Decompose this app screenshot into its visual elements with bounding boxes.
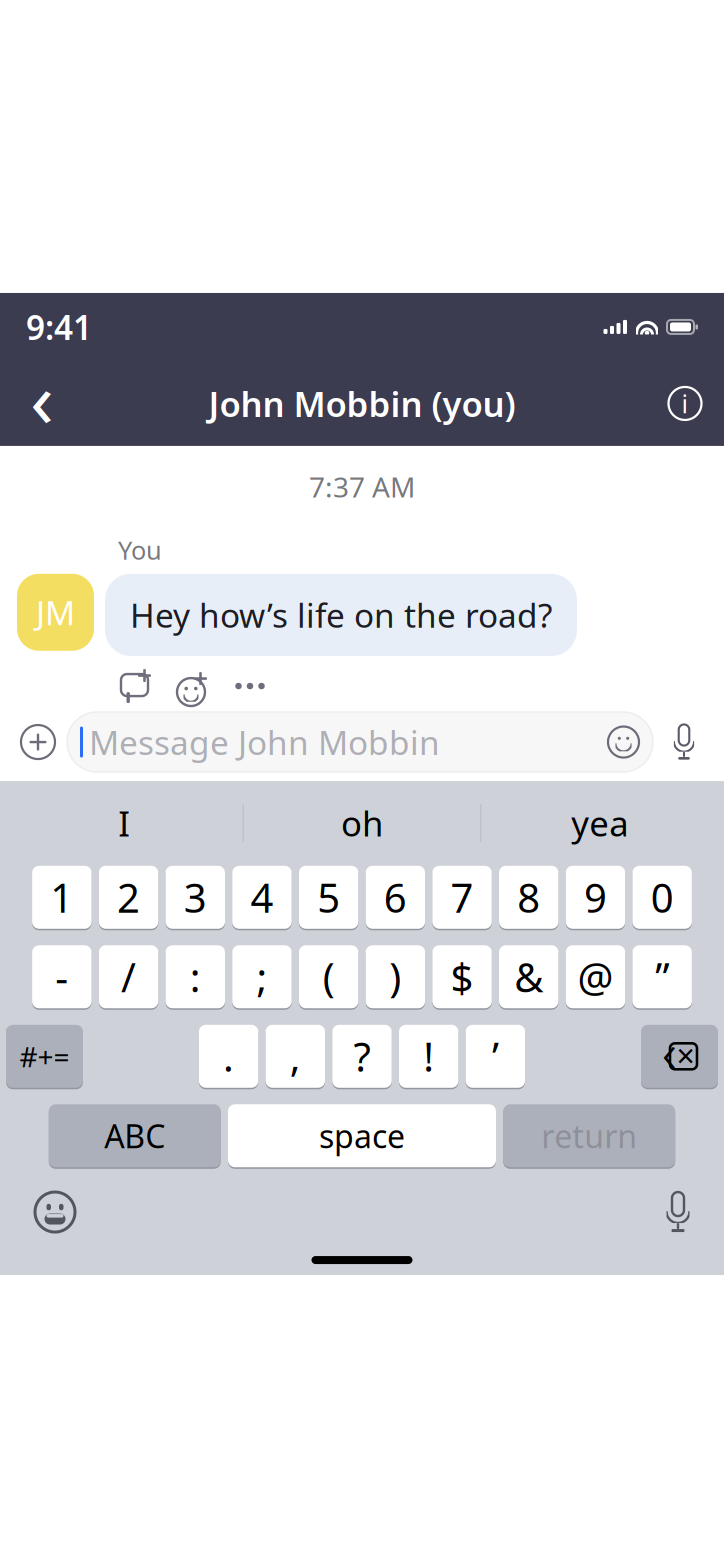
button[interactable]: I [6,793,243,853]
staticText: I [118,800,130,846]
button[interactable]: Record voice message [653,713,715,771]
button[interactable]: Add attachment [9,713,67,771]
staticText: / [121,950,136,1003]
button[interactable]: 1 [32,865,92,929]
staticText: ) [389,950,401,1003]
button[interactable]: Emoji keyboard [32,1189,78,1235]
staticText: ! [423,1030,434,1083]
button[interactable]: 5 [299,865,358,929]
staticText: ‹ [30,346,54,449]
staticText: 2 [117,871,140,924]
staticText: 7 [451,871,474,924]
button[interactable]: 4 [232,865,292,929]
button[interactable]: @ [566,944,625,1009]
staticText: ? [353,1030,370,1083]
button[interactable]: ’ [466,1024,525,1088]
button[interactable]: #+= [6,1024,83,1088]
button[interactable]: oh [244,793,480,853]
staticText: 8 [517,871,540,924]
staticText: 9:41 [26,305,92,349]
staticText: ” [655,950,669,1003]
staticText: ( [323,950,335,1003]
staticText: . [223,1030,234,1083]
button[interactable]: ! [399,1024,458,1088]
button[interactable]: ) [366,944,425,1009]
button[interactable]: ; [232,944,292,1009]
staticText: - [55,950,68,1003]
staticText: #+= [19,1038,69,1075]
button[interactable]: 9 [566,865,625,929]
staticText: yea [571,800,628,846]
staticText: 3 [184,871,207,924]
staticText: 1 [50,871,73,924]
staticText: : [190,950,201,1003]
button[interactable]: Add reaction [175,669,211,703]
staticText: i [681,387,688,420]
button[interactable]: More options [232,669,268,703]
button[interactable]: 3 [165,865,225,929]
staticText: 0 [651,871,674,924]
staticText: $ [451,950,474,1003]
staticText: 7:37 AM [309,468,415,505]
button[interactable]: Message John Mobbin [67,712,653,772]
button[interactable]: Reply [118,669,154,703]
staticText: JM [36,590,75,634]
staticText: , [290,1030,301,1083]
button[interactable]: : [165,944,225,1009]
button[interactable]: return [503,1103,675,1168]
button[interactable]: ? [332,1024,392,1088]
staticText: & [514,950,543,1003]
staticText: You [118,533,162,567]
button[interactable]: Conversation info [659,377,711,429]
staticText: Message John Mobbin [89,720,440,764]
staticText: ‹ [662,1014,677,1088]
button[interactable]: . [199,1024,258,1088]
button[interactable]: space [228,1103,496,1168]
staticText: 6 [384,871,407,924]
staticText: Hey how’s life on the road? [130,593,552,637]
button[interactable]: 7 [432,865,492,929]
button[interactable]: - [32,944,92,1009]
staticText: John Mobbin (you) [208,380,515,426]
button[interactable]: Back [13,374,71,432]
staticText: ; [256,950,267,1003]
staticText: space [319,1114,405,1157]
staticText: 5 [317,871,340,924]
button[interactable]: 8 [499,865,558,929]
button[interactable]: Dictate [664,1192,692,1232]
button[interactable]: Delete [641,1024,718,1088]
staticText: 4 [250,871,273,924]
button[interactable]: ” [632,944,692,1009]
staticText: ABC [104,1114,165,1157]
button[interactable]: $ [432,944,492,1009]
button[interactable]: 0 [632,865,692,929]
staticText: oh [341,800,383,846]
staticText: 9 [584,871,607,924]
staticText: return [541,1114,637,1157]
staticText: @ [577,950,613,1003]
button[interactable]: & [499,944,558,1009]
button[interactable]: / [99,944,158,1009]
button[interactable]: 6 [366,865,425,929]
button[interactable]: , [266,1024,325,1088]
staticText: ’ [492,1030,499,1083]
button[interactable]: yea [481,793,718,853]
staticText: × [676,1034,694,1076]
button[interactable]: 2 [99,865,158,929]
button[interactable]: ( [299,944,358,1009]
button[interactable]: ABC [49,1103,221,1168]
